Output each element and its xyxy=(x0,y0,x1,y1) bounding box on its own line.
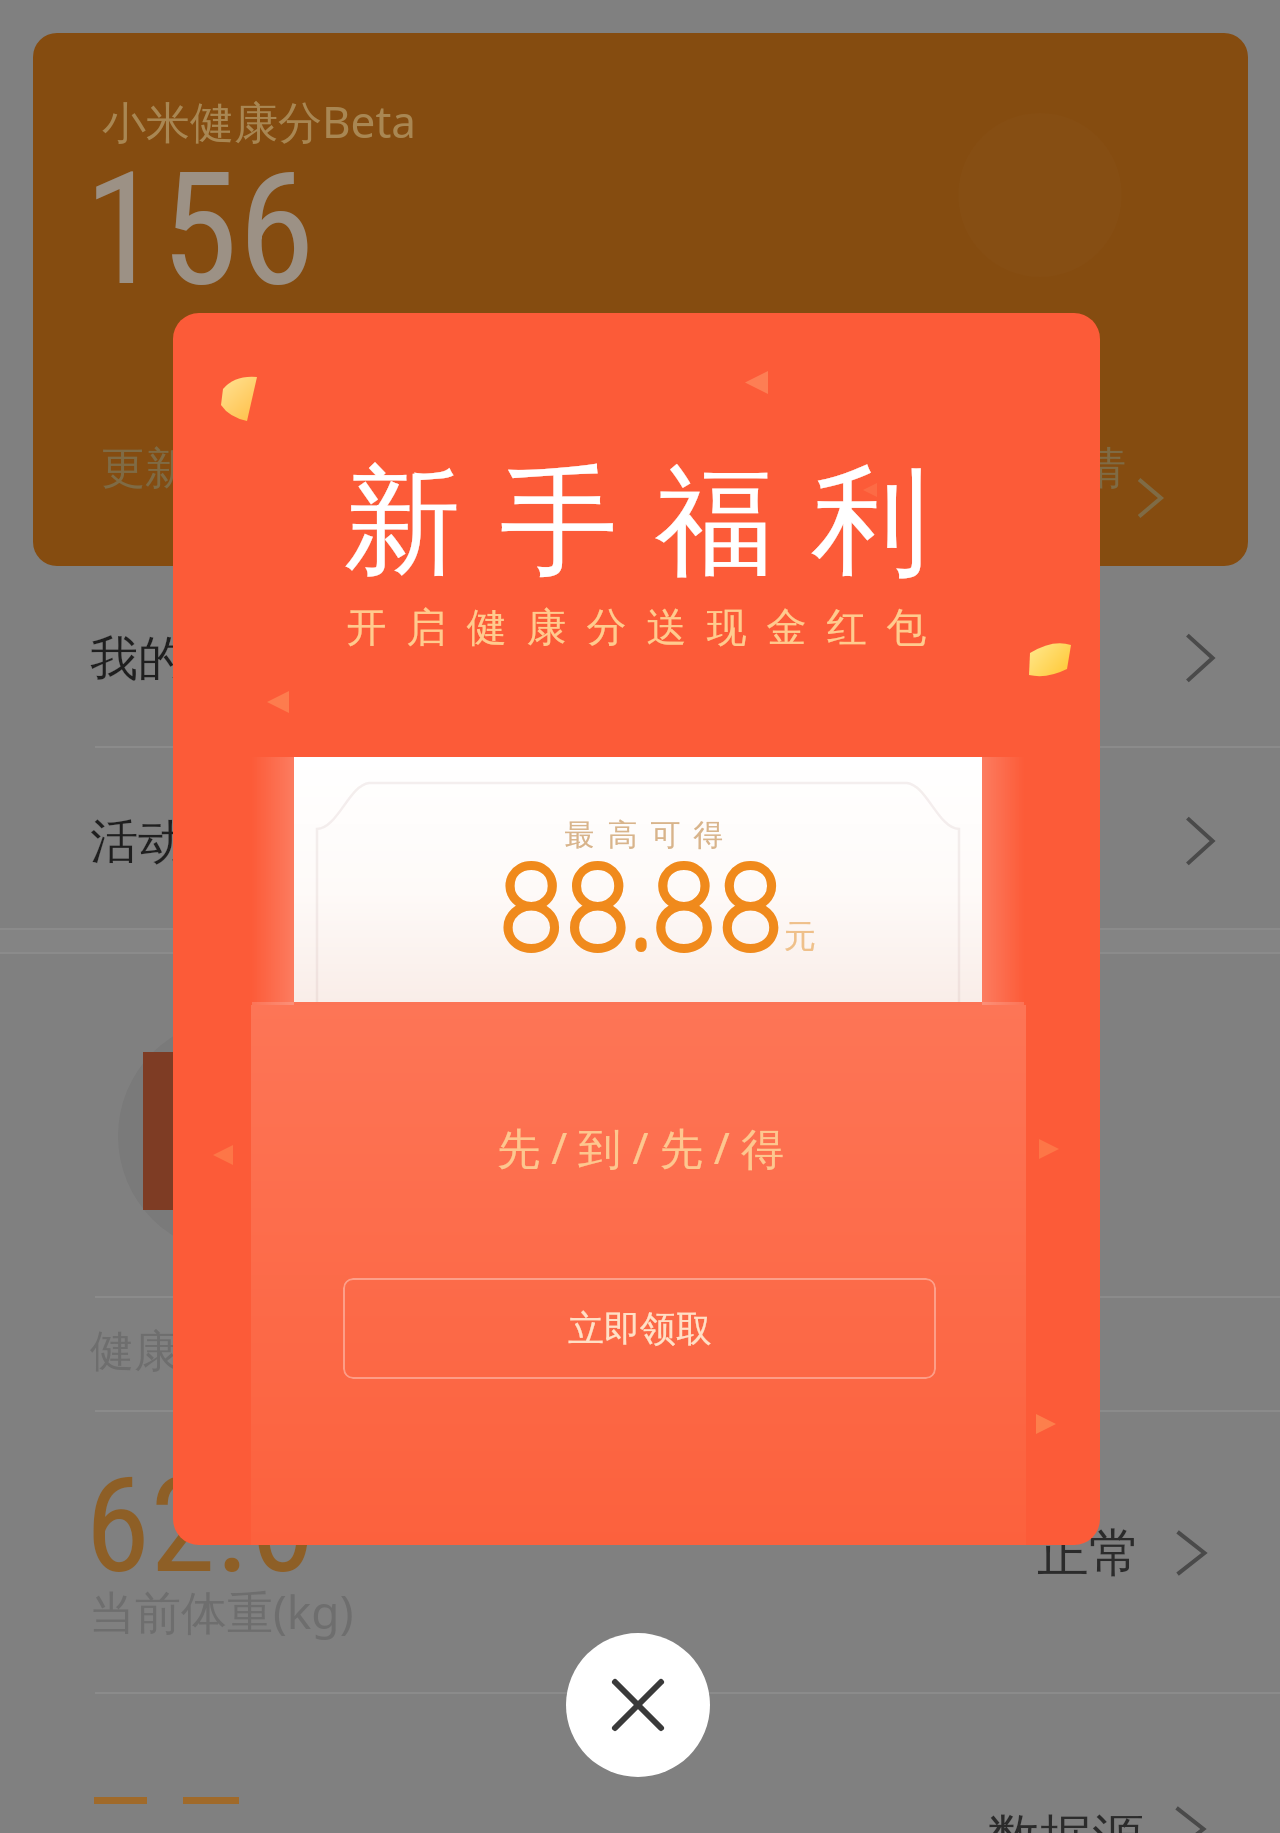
staticText: 正常 xyxy=(1037,1521,1141,1587)
button[interactable] xyxy=(0,1694,1280,1833)
staticText: 88.88 xyxy=(498,826,784,972)
staticText: 最高可得 xyxy=(558,816,730,854)
button[interactable]: 立即领取 xyxy=(343,1278,936,1379)
button[interactable]: 小米健康分Beta xyxy=(33,33,1248,566)
button[interactable] xyxy=(0,1412,1280,1690)
staticText: 元 xyxy=(784,916,816,956)
staticText: 小米健康分Beta xyxy=(102,91,416,151)
staticText: 更新 xyxy=(101,441,189,496)
staticText: 新手福利 xyxy=(192,448,1100,597)
staticText: 当前体重(kg) xyxy=(89,1580,354,1643)
staticText: 我的 xyxy=(90,629,186,689)
button[interactable]: 我的 xyxy=(0,584,1280,732)
staticText: 先 / 到 / 先 / 得 xyxy=(177,1118,1100,1177)
staticText: 156 xyxy=(84,138,316,321)
staticText: 健康 xyxy=(90,1324,178,1379)
button[interactable]: 活动 xyxy=(0,767,1280,915)
staticText: 立即领取 xyxy=(568,1306,712,1351)
staticText: 62.0 xyxy=(85,1449,316,1604)
staticText: 请 xyxy=(1082,441,1126,496)
button[interactable] xyxy=(0,1298,1280,1410)
staticText: 数据源 xyxy=(988,1806,1144,1833)
button[interactable]: Close xyxy=(566,1633,710,1777)
staticText: 活动 xyxy=(90,812,186,872)
staticText: 开启健康分送现金红包 xyxy=(183,602,1100,652)
